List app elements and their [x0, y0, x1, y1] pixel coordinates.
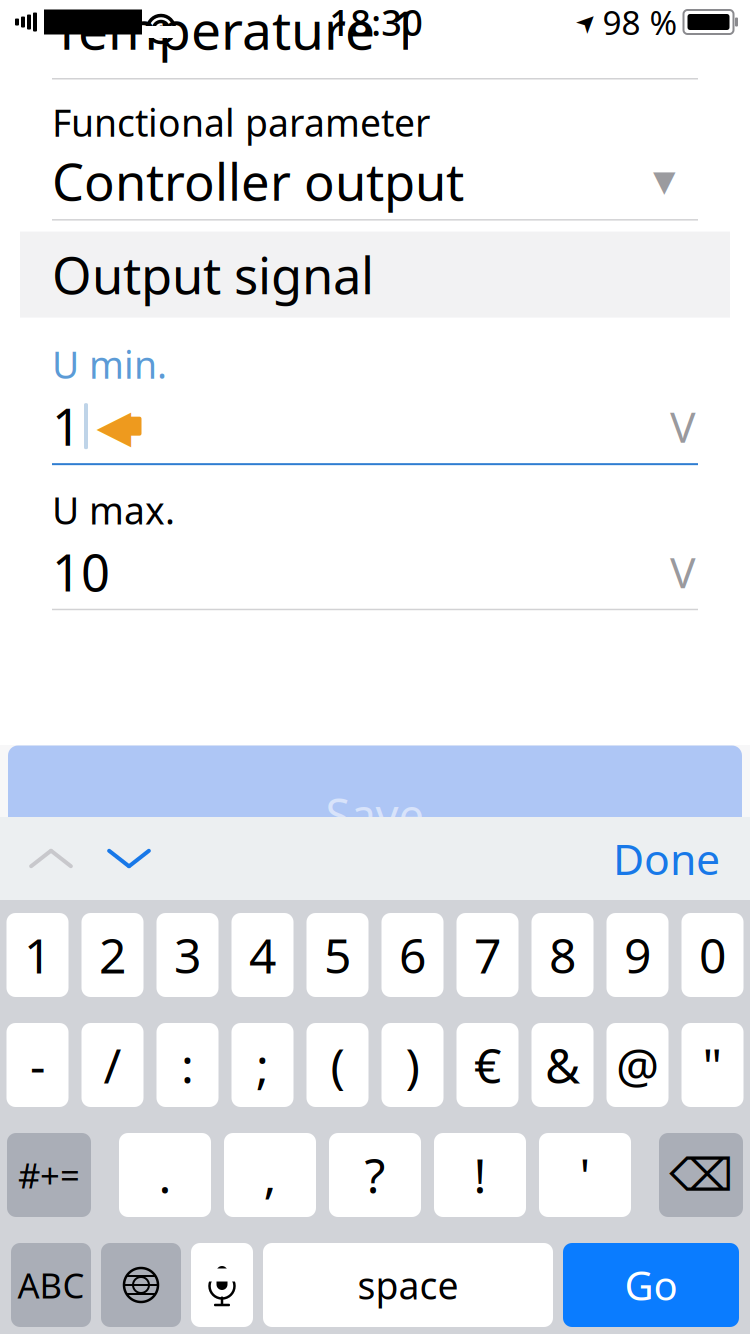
staticText: Go	[624, 1258, 677, 1311]
staticText: '	[579, 1143, 590, 1207]
button[interactable]: 3	[156, 913, 218, 997]
button[interactable]: ;	[231, 1023, 293, 1107]
staticText: -	[30, 1033, 45, 1097]
staticText: 8	[549, 923, 576, 987]
staticText: 1	[24, 923, 51, 987]
staticText: !	[473, 1143, 486, 1207]
button[interactable]: ?	[329, 1133, 421, 1217]
staticText: 2	[99, 923, 126, 987]
button[interactable]: !	[434, 1133, 526, 1217]
button[interactable]: .	[119, 1133, 211, 1217]
button[interactable]: 1	[6, 913, 68, 997]
button[interactable]: (	[306, 1023, 368, 1107]
button[interactable]: Go	[563, 1243, 739, 1327]
staticText: .	[158, 1143, 171, 1207]
button[interactable]: :	[156, 1023, 218, 1107]
button[interactable]: €	[456, 1023, 518, 1107]
staticText: Functional parameter	[52, 97, 430, 147]
staticText: ,	[263, 1143, 276, 1207]
button[interactable]: Dictate	[191, 1243, 253, 1327]
staticText: 10	[52, 538, 110, 605]
button[interactable]: 9	[606, 913, 668, 997]
button[interactable]: Delete	[659, 1133, 743, 1217]
button[interactable]: space	[263, 1243, 553, 1327]
staticText: 4	[249, 923, 276, 987]
staticText: space	[357, 1260, 458, 1310]
staticText: U min.	[52, 340, 167, 389]
staticText: 9	[624, 923, 651, 987]
staticText: #+=	[18, 1152, 80, 1198]
button[interactable]: 2	[81, 913, 143, 997]
staticText: ▼	[653, 164, 676, 198]
button[interactable]: 8	[531, 913, 593, 997]
staticText: (	[330, 1033, 344, 1097]
button[interactable]: Next keyboard	[101, 1243, 181, 1327]
staticText: 18:30	[329, 0, 423, 46]
button[interactable]: 0	[681, 913, 743, 997]
button[interactable]: 5	[306, 913, 368, 997]
staticText: 98 %	[602, 0, 677, 44]
staticText: "	[702, 1033, 722, 1097]
staticText: @	[616, 1033, 659, 1097]
staticText: 7	[474, 923, 501, 987]
button[interactable]: Save	[8, 745, 742, 831]
button[interactable]: ,	[224, 1133, 316, 1217]
staticText: €	[474, 1033, 501, 1097]
staticText: Save	[325, 784, 424, 845]
button[interactable]: Previous field	[12, 817, 90, 900]
button[interactable]: Functional parameter	[0, 79, 750, 221]
staticText: V	[670, 543, 696, 600]
staticText: ⌫	[669, 1149, 733, 1201]
button[interactable]: #+=	[7, 1133, 91, 1217]
staticText: /	[103, 1033, 121, 1097]
button[interactable]: U max.	[0, 469, 750, 610]
button[interactable]: 4	[231, 913, 293, 997]
button[interactable]: )	[381, 1023, 443, 1107]
staticText: :	[181, 1033, 194, 1097]
staticText: V	[670, 398, 696, 454]
button[interactable]: -	[6, 1023, 68, 1107]
button[interactable]: 7	[456, 913, 518, 997]
button[interactable]: "	[681, 1023, 743, 1107]
staticText: ◀	[96, 400, 131, 452]
staticText: Temperature 1	[52, 0, 420, 64]
staticText: Output signal	[52, 241, 374, 308]
staticText: ➤	[576, 8, 597, 36]
staticText: 1	[52, 392, 81, 460]
staticText: 6	[399, 923, 426, 987]
button[interactable]: /	[81, 1023, 143, 1107]
staticText: ;	[256, 1033, 269, 1097]
staticText: ?	[364, 1143, 385, 1207]
button[interactable]: Done	[595, 817, 738, 900]
staticText: 5	[324, 923, 351, 987]
staticText: &	[545, 1033, 580, 1097]
staticText: U max.	[52, 485, 175, 535]
staticText: )	[405, 1033, 419, 1097]
staticText: 0	[699, 923, 726, 987]
staticText: Done	[613, 830, 720, 887]
button[interactable]: Next field	[90, 817, 168, 900]
button[interactable]: '	[539, 1133, 631, 1217]
staticText: ABC	[17, 1262, 84, 1308]
button[interactable]: &	[531, 1023, 593, 1107]
button[interactable]: ABC	[11, 1243, 91, 1327]
button[interactable]: U min.	[0, 324, 750, 465]
staticText: 3	[174, 923, 201, 987]
button[interactable]: 6	[381, 913, 443, 997]
staticText: Controller output	[52, 147, 464, 215]
button[interactable]: @	[606, 1023, 668, 1107]
